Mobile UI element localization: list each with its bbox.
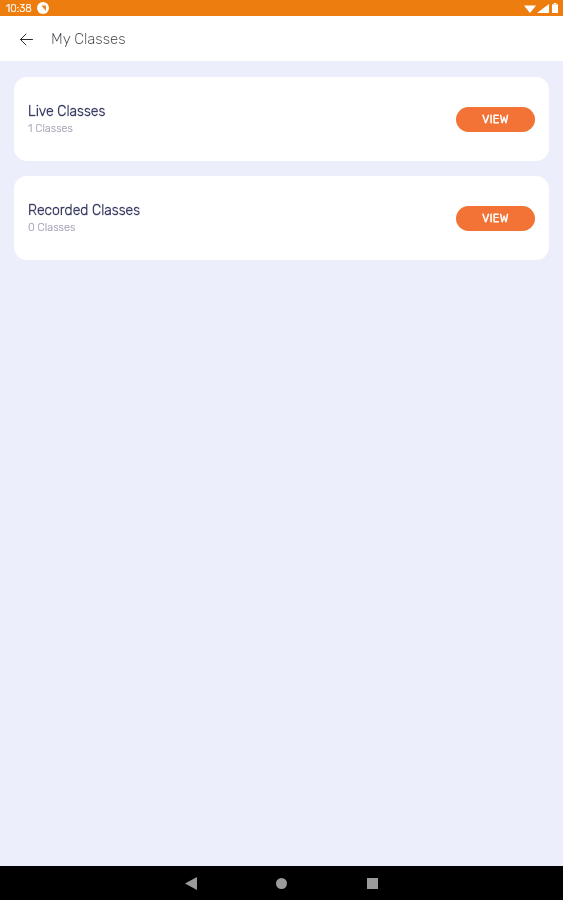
staticText: My Classes xyxy=(51,30,126,48)
staticText: Recorded Classes xyxy=(28,202,141,219)
staticText: 1 Classes xyxy=(28,122,73,135)
button[interactable]: Home xyxy=(236,866,327,900)
button[interactable]: VIEW xyxy=(456,107,535,132)
button[interactable]: Live Classes xyxy=(14,77,549,161)
staticText: 0 Classes xyxy=(28,221,76,234)
staticText: VIEW xyxy=(482,212,509,225)
button[interactable]: Back xyxy=(8,21,44,57)
button[interactable]: Recorded Classes xyxy=(14,176,549,260)
staticText: 10:38 xyxy=(6,2,32,14)
button[interactable]: Back xyxy=(145,866,236,900)
button[interactable]: Recent apps xyxy=(327,866,418,900)
button[interactable]: VIEW xyxy=(456,206,535,231)
staticText: Live Classes xyxy=(28,103,106,120)
staticText: VIEW xyxy=(482,113,509,126)
